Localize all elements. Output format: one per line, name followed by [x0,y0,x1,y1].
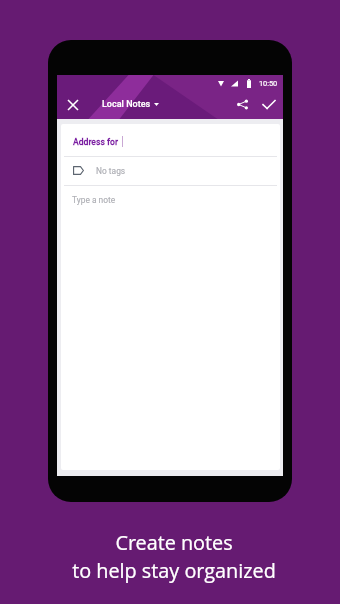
staticText: No tags [96,166,126,176]
button[interactable]: Address for [73,136,123,147]
button[interactable]: Close [59,91,86,118]
button[interactable]: Share [229,91,256,118]
button[interactable]: Local Notes [102,94,159,115]
staticText: 10:50 [259,79,278,88]
button[interactable]: No tags [61,156,280,185]
staticText: Address for [73,137,118,147]
button[interactable]: Save note [255,91,282,118]
staticText: Create notes [115,529,233,556]
staticText: Type a note [72,195,116,205]
staticText: to help stay organized [72,557,276,584]
staticText: Local Notes [102,99,151,110]
